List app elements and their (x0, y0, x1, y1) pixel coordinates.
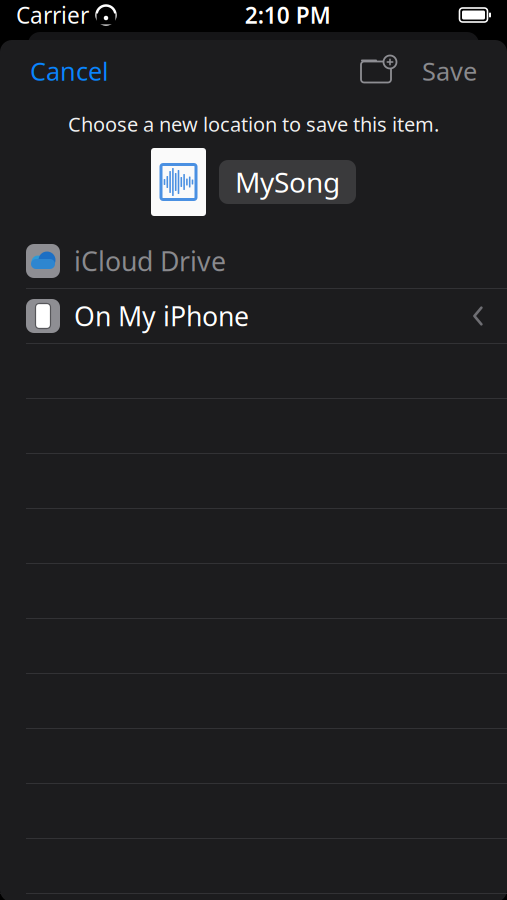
staticText: MySong (235, 163, 340, 201)
staticText: 2:10 PM (245, 0, 331, 30)
button[interactable]: New Folder (344, 47, 408, 95)
staticText: iCloud Drive (74, 243, 226, 279)
staticText: Save (422, 54, 477, 88)
staticText: Carrier (16, 0, 89, 30)
button[interactable]: On My iPhone (0, 289, 507, 343)
staticText: Choose a new location to save this item. (68, 111, 439, 137)
button[interactable]: MySong (219, 160, 356, 204)
button[interactable]: iCloud Drive (0, 234, 507, 288)
button[interactable]: Cancel (16, 44, 123, 98)
staticText: Cancel (30, 54, 109, 88)
button[interactable]: Save (408, 44, 491, 98)
staticText: On My iPhone (74, 298, 249, 334)
